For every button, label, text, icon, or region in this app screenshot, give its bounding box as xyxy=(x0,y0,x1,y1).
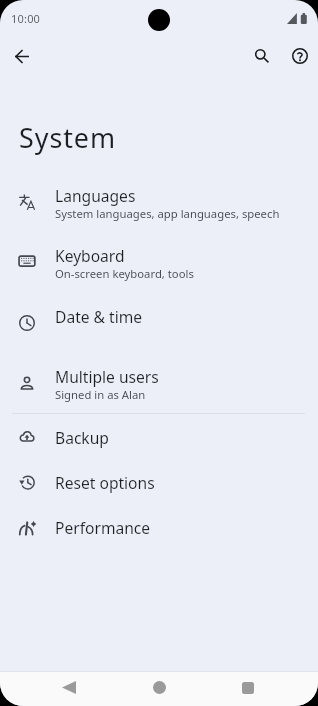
staticText: 10:00 xyxy=(11,13,41,26)
button[interactable] xyxy=(0,460,318,505)
staticText: Performance xyxy=(55,520,151,538)
button[interactable]: Back xyxy=(52,671,88,706)
staticText: Date & time xyxy=(55,309,143,327)
button[interactable] xyxy=(0,172,318,230)
staticText: Reset options xyxy=(55,475,155,493)
button[interactable]: Home xyxy=(141,671,177,706)
staticText: System languages, app languages, speech xyxy=(55,208,280,221)
staticText: Multiple users xyxy=(55,369,159,387)
button[interactable]: Search xyxy=(246,40,278,72)
staticText: Backup xyxy=(55,430,109,448)
staticText: Signed in as Alan xyxy=(55,389,146,402)
staticText: Keyboard xyxy=(55,248,125,266)
button[interactable] xyxy=(0,505,318,550)
button[interactable]: Recents xyxy=(230,671,266,706)
button[interactable]: Back xyxy=(6,40,38,72)
button[interactable] xyxy=(0,232,318,290)
button[interactable]: Help xyxy=(284,40,316,72)
staticText: System xyxy=(19,123,117,154)
button[interactable] xyxy=(0,301,318,346)
staticText: On-screen keyboard, tools xyxy=(55,268,194,281)
staticText: Languages xyxy=(55,188,136,206)
button[interactable] xyxy=(0,354,318,412)
button[interactable] xyxy=(0,414,318,459)
